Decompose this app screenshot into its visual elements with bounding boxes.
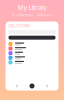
- button[interactable]: [5, 36, 58, 40]
- button[interactable]: [5, 60, 58, 65]
- staticText: 12 collections · 248 items: [11, 13, 52, 17]
- button[interactable]: Add: [28, 82, 35, 89]
- button[interactable]: Profile: [44, 83, 50, 89]
- button[interactable]: [5, 42, 58, 46]
- button[interactable]: [5, 51, 58, 55]
- button[interactable]: [5, 55, 58, 60]
- staticText: My Library: [17, 4, 46, 11]
- button[interactable]: [5, 46, 58, 51]
- staticText: COLLECTIONS: [8, 24, 29, 28]
- button[interactable]: Home: [14, 83, 20, 89]
